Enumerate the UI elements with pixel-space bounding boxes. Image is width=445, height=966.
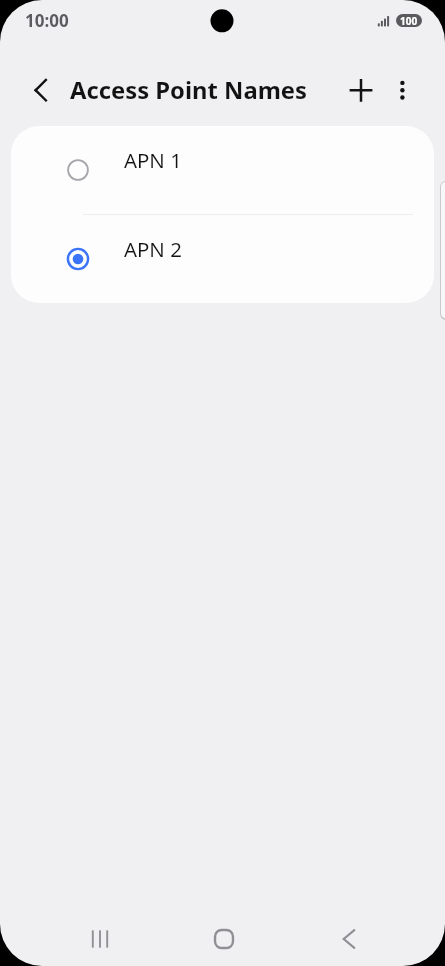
staticText: 100 — [400, 14, 418, 27]
button[interactable]: More options — [381, 69, 423, 111]
button[interactable]: APN 1 — [11, 126, 434, 214]
staticText: Access Point Names — [70, 74, 308, 106]
button[interactable]: Recent apps — [78, 917, 122, 961]
staticText: APN 2 — [124, 235, 182, 263]
button[interactable]: Add — [340, 69, 382, 111]
button[interactable]: Home — [202, 917, 246, 961]
staticText: 10:00 — [25, 9, 69, 32]
button[interactable]: Navigate up — [19, 69, 61, 111]
button[interactable]: APN 2 — [11, 215, 434, 303]
staticText: APN 1 — [124, 146, 182, 174]
button[interactable]: Back — [327, 917, 371, 961]
